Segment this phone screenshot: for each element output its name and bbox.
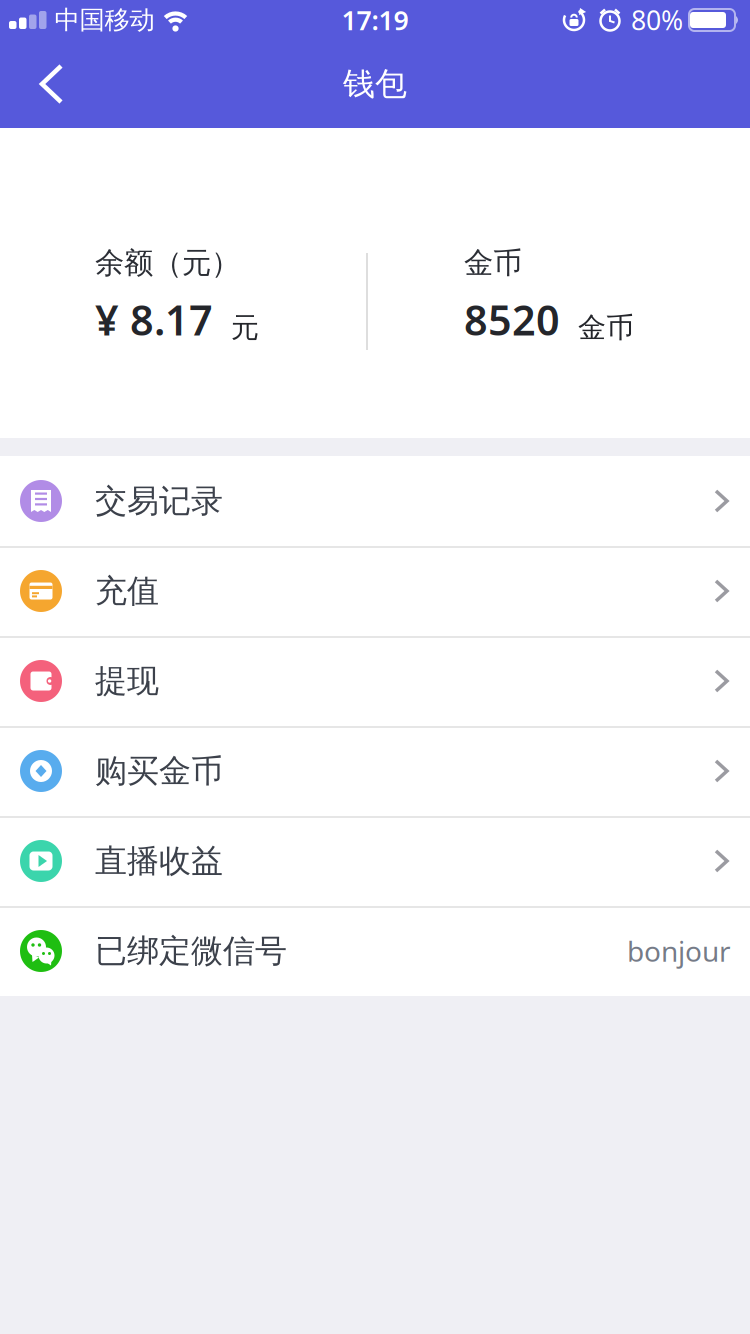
staticText: 中国移动 (54, 4, 154, 35)
button[interactable]: 购买金币 (0, 726, 750, 816)
staticText: 直播收益 (95, 841, 223, 881)
staticText: 已绑定微信号 (95, 931, 287, 971)
button[interactable]: 已绑定微信号 (0, 906, 750, 996)
staticText: 金币 (464, 245, 522, 281)
staticText: ¥ 8.17 (95, 292, 213, 347)
staticText: 交易记录 (95, 481, 223, 521)
button[interactable]: 交易记录 (0, 456, 750, 546)
staticText: 80% (631, 2, 683, 38)
button[interactable]: 充值 (0, 546, 750, 636)
staticText: 金币 (578, 310, 634, 345)
staticText: 购买金币 (95, 751, 223, 791)
button[interactable]: Back (0, 62, 66, 106)
staticText: 钱包 (343, 64, 407, 104)
button[interactable]: 直播收益 (0, 816, 750, 906)
staticText: 8520 (464, 292, 560, 347)
staticText: bonjour (627, 932, 731, 970)
staticText: 充值 (95, 571, 159, 611)
staticText: 17:19 (341, 2, 408, 38)
staticText: 余额（元） (95, 245, 240, 281)
button[interactable]: 提现 (0, 636, 750, 726)
staticText: 提现 (95, 661, 159, 701)
staticText: 元 (231, 310, 259, 345)
